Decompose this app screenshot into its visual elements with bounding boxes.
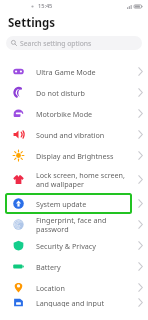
staticText: Ultra Game Mode — [36, 67, 96, 77]
staticText: Battery — [36, 262, 61, 272]
staticText: Display and Brightness — [36, 151, 114, 161]
staticText: Language and input — [36, 298, 104, 307]
button[interactable]: Security & Privacy — [0, 235, 148, 256]
staticText: Settings — [8, 15, 56, 31]
button[interactable]: Display and Brightness — [0, 145, 148, 166]
button[interactable]: Motorbike Mode — [0, 103, 148, 124]
button[interactable]: Sound and vibration — [0, 124, 148, 145]
button[interactable]: System update — [0, 193, 148, 214]
button[interactable]: Location — [0, 277, 148, 298]
button[interactable]: Ultra Game Mode — [0, 61, 148, 82]
button[interactable]: Battery — [0, 256, 148, 277]
staticText: Sound and vibration — [36, 130, 105, 140]
staticText: Search setting options — [20, 39, 92, 48]
staticText: Security & Privacy — [36, 241, 96, 251]
staticText: Do not disturb — [36, 88, 85, 98]
staticText: 15:45 — [38, 2, 53, 10]
button[interactable]: Language and input — [0, 298, 148, 307]
button[interactable]: Search setting options — [6, 36, 142, 50]
staticText: System update — [36, 199, 87, 209]
staticText: Location — [36, 283, 65, 293]
button[interactable]: Fingerprint, face and password — [0, 214, 148, 235]
staticText: Lock screen, home screen, and wallpaper — [36, 170, 134, 189]
button[interactable]: Do not disturb — [0, 82, 148, 103]
staticText: Fingerprint, face and password — [36, 215, 134, 234]
staticText: Motorbike Mode — [36, 109, 93, 119]
button[interactable]: Lock screen, home screen, and wallpaper — [0, 166, 148, 193]
